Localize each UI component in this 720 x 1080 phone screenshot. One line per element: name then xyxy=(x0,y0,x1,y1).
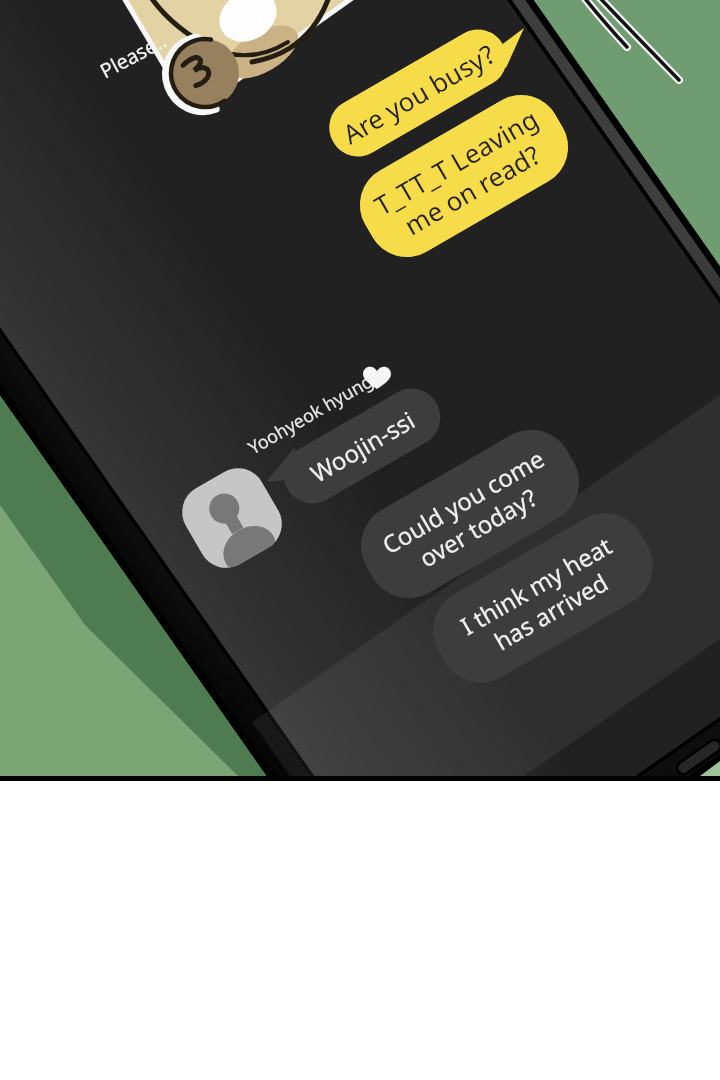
button[interactable]: T_TT_T Leaving me on read? xyxy=(345,80,583,272)
button[interactable]: Are you busy? xyxy=(319,19,517,167)
staticText: Please.. xyxy=(95,27,171,84)
button[interactable]: I think my heat has arrived xyxy=(418,498,668,698)
button[interactable] xyxy=(172,458,292,578)
button[interactable]: Could you come over today? xyxy=(345,414,594,613)
staticText: Could you come over today? xyxy=(376,442,565,587)
staticText: Woojin-ssi xyxy=(304,403,421,490)
staticText: Are you busy? xyxy=(336,36,501,151)
staticText: I think my heat has arrived xyxy=(454,529,633,668)
staticText: Yoohyeok hyung xyxy=(243,368,378,460)
button[interactable]: Woojin-ssi xyxy=(273,378,451,514)
staticText: T_TT_T Leaving me on read? xyxy=(367,101,561,251)
